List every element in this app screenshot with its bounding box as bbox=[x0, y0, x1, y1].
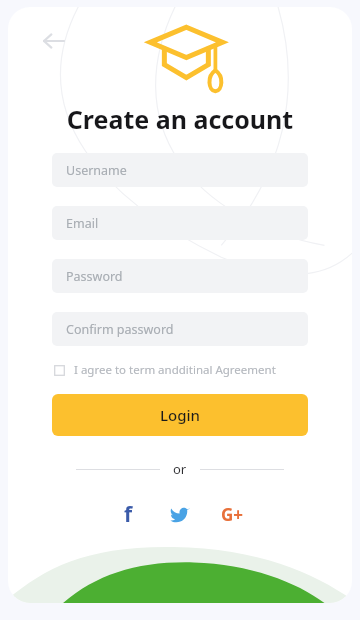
staticText: Login bbox=[160, 405, 200, 425]
staticText: Create an account bbox=[8, 102, 352, 136]
button[interactable]: Facebook bbox=[111, 497, 145, 531]
staticText: Password bbox=[66, 268, 123, 285]
staticText: I agree to term andditinal Agreement bbox=[74, 362, 276, 378]
button[interactable]: Google Plus bbox=[215, 497, 249, 531]
button[interactable]: Twitter bbox=[163, 497, 197, 531]
button[interactable]: Confirm password bbox=[52, 312, 308, 346]
button[interactable]: Password bbox=[52, 259, 308, 293]
button[interactable]: I agree to term andditinal Agreement bbox=[54, 362, 276, 378]
staticText: or bbox=[173, 460, 187, 478]
button[interactable]: Back bbox=[34, 21, 74, 61]
button[interactable]: Login bbox=[52, 394, 308, 436]
button[interactable]: Email bbox=[52, 206, 308, 240]
staticText: Username bbox=[66, 162, 127, 179]
staticText: Email bbox=[66, 215, 99, 232]
button[interactable]: Username bbox=[52, 153, 308, 187]
staticText: Confirm password bbox=[66, 321, 174, 338]
staticText: G+ bbox=[221, 503, 244, 526]
staticText: f bbox=[124, 500, 133, 529]
